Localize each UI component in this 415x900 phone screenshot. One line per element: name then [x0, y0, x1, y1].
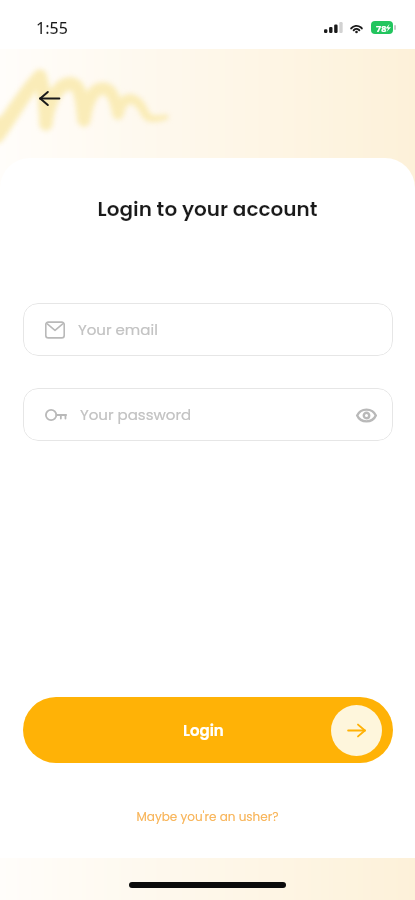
- button[interactable]: Your email: [23, 303, 393, 356]
- button[interactable]: Maybe you're an usher?: [0, 808, 415, 825]
- staticText: Your email: [78, 319, 158, 340]
- staticText: 1:55: [36, 17, 68, 39]
- staticText: Your password: [80, 404, 192, 425]
- button[interactable]: Your password: [23, 388, 393, 441]
- button[interactable]: Continue: [331, 705, 382, 756]
- staticText: Login: [183, 720, 224, 741]
- button[interactable]: Back: [31, 80, 67, 116]
- staticText: Login to your account: [0, 195, 415, 223]
- button[interactable]: Show password: [347, 396, 385, 434]
- staticText: 78: [376, 22, 387, 34]
- button[interactable]: Login: [23, 697, 393, 763]
